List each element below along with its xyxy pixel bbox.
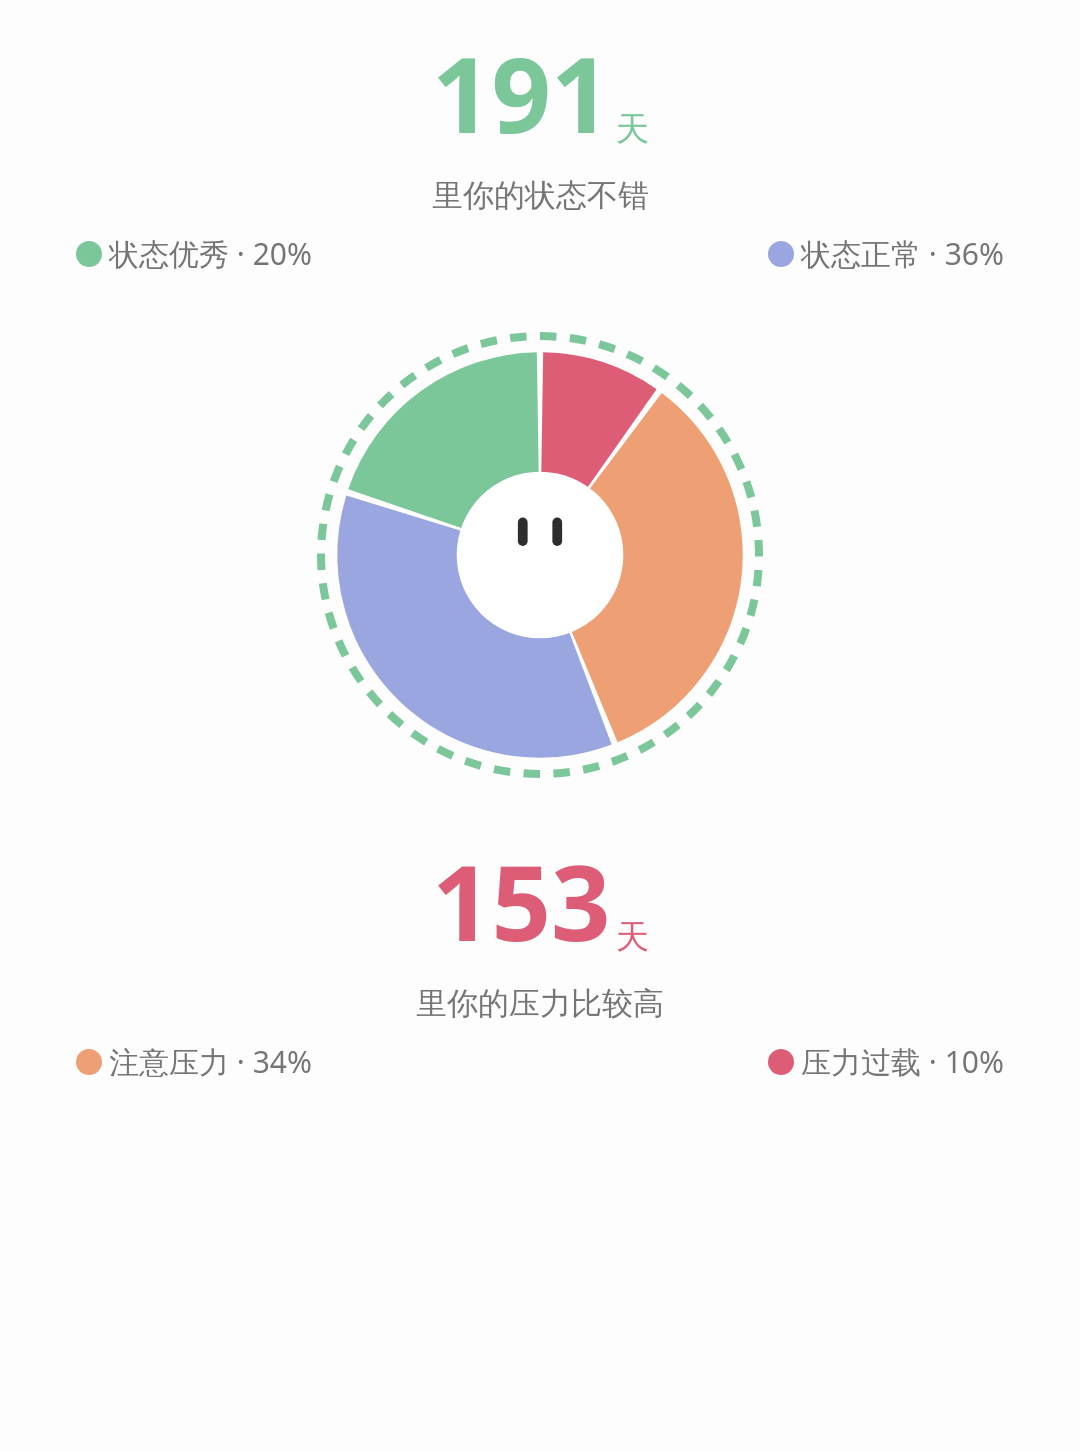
button[interactable]: 压力过载 · 10% — [768, 1041, 1004, 1082]
staticText: 里你的压力比较高 — [416, 984, 664, 1023]
staticText: 天 — [616, 108, 649, 150]
staticText: 压力过载 · 10% — [801, 1041, 1004, 1082]
staticText: 153 — [432, 830, 611, 972]
staticText: 191 — [432, 22, 611, 164]
staticText: 天 — [616, 916, 649, 958]
staticText: 注意压力 · 34% — [109, 1041, 312, 1082]
staticText: 里你的状态不错 — [432, 176, 649, 215]
button[interactable]: 状态分布图 — [317, 332, 763, 778]
button[interactable]: 状态优秀 · 20% — [76, 233, 312, 274]
button[interactable]: 注意压力 · 34% — [76, 1041, 312, 1082]
staticText: 状态正常 · 36% — [801, 233, 1004, 274]
button[interactable]: 状态正常 · 36% — [768, 233, 1004, 274]
staticText: 状态优秀 · 20% — [109, 233, 312, 274]
